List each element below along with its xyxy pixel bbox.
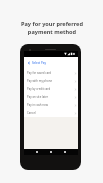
button[interactable]: Pay with my phone xyxy=(24,77,78,85)
other: Back xyxy=(27,61,31,65)
staticText: Pay with my phone xyxy=(27,79,53,83)
button[interactable]: Pay by credit card xyxy=(24,85,78,93)
button[interactable]: Back xyxy=(24,57,78,69)
button[interactable]: Pay for saved card xyxy=(24,69,78,77)
staticText: Pay on site later xyxy=(27,95,48,99)
staticText: Pay for your preferred payment method xyxy=(21,20,83,36)
staticText: Pay by credit card xyxy=(27,87,51,91)
button[interactable]: Cancel xyxy=(24,109,78,117)
staticText: Pay for saved card xyxy=(27,71,52,75)
staticText: Pay in cash now xyxy=(27,103,48,107)
staticText: Select Pay xyxy=(32,61,46,65)
button[interactable]: Pay in cash now xyxy=(24,101,78,109)
button[interactable]: Pay on site later xyxy=(24,93,78,101)
staticText: Cancel xyxy=(27,111,36,115)
